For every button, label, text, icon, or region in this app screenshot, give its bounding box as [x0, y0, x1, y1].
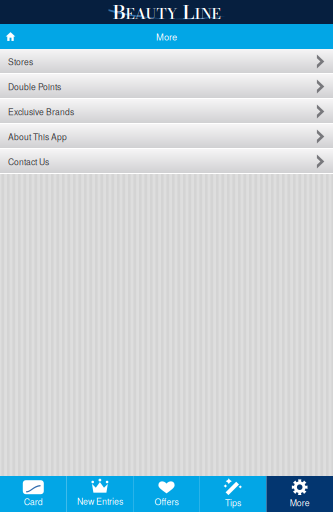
- staticText: More: [156, 30, 177, 43]
- staticText: Contact Us: [8, 155, 49, 168]
- button[interactable]: Contact Us: [0, 149, 333, 174]
- staticText: L: [177, 0, 194, 27]
- staticText: Exclusive Brands: [8, 105, 74, 118]
- button[interactable]: More: [266, 476, 333, 512]
- staticText: Double Points: [8, 80, 61, 93]
- staticText: B: [112, 0, 125, 27]
- staticText: INE: [194, 2, 220, 25]
- button[interactable]: Offers: [133, 476, 200, 512]
- staticText: More: [290, 496, 310, 509]
- button[interactable]: New Entries: [67, 476, 133, 512]
- staticText: EAUTY: [125, 2, 177, 25]
- staticText: New Entries: [77, 495, 123, 507]
- button[interactable]: About This App: [0, 124, 333, 149]
- button[interactable]: Tips: [200, 476, 266, 512]
- button[interactable]: Stores: [0, 49, 333, 74]
- button[interactable]: Home: [0, 24, 21, 49]
- staticText: Card: [24, 495, 43, 508]
- staticText: Offers: [154, 495, 178, 508]
- button[interactable]: Exclusive Brands: [0, 99, 333, 124]
- staticText: Tips: [225, 496, 241, 509]
- button[interactable]: Double Points: [0, 74, 333, 99]
- button[interactable]: Card: [0, 476, 67, 512]
- staticText: Stores: [8, 55, 33, 68]
- staticText: About This App: [8, 130, 67, 143]
